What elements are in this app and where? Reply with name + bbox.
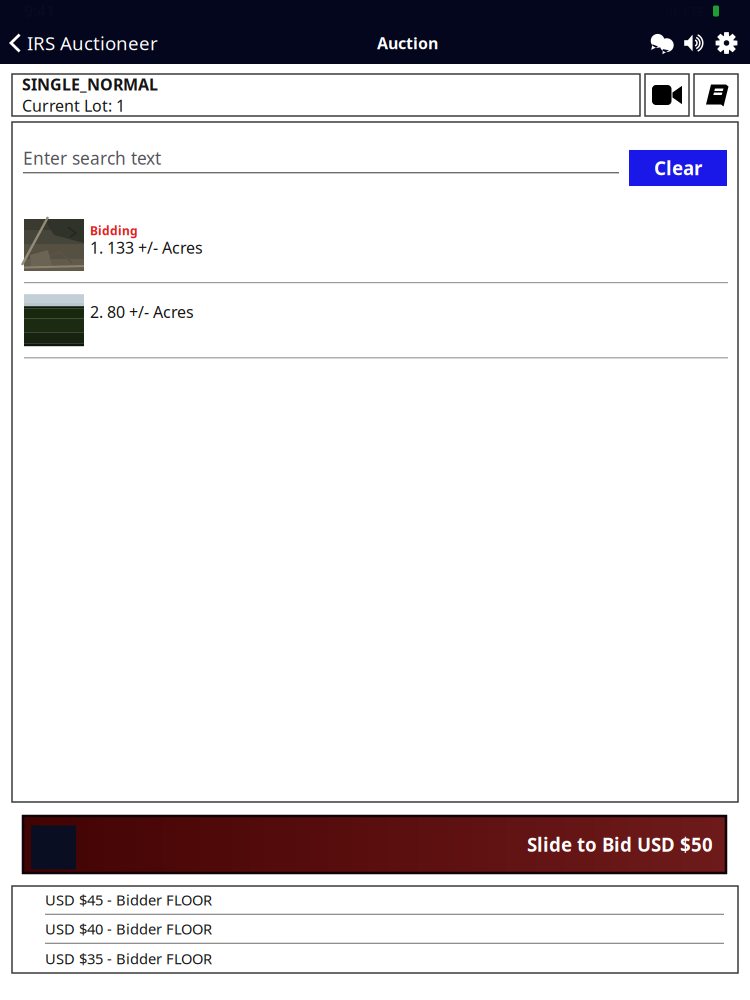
staticText: Bidding: [90, 222, 138, 238]
staticText: 1. 133 +/- Acres: [90, 237, 203, 258]
button[interactable]: Sound: [683, 29, 707, 57]
staticText: USD $45 - Bidder FLOOR: [45, 890, 212, 910]
staticText: SINGLE_NORMAL: [22, 74, 158, 95]
button[interactable]: Clear: [629, 150, 727, 186]
staticText: Clear: [654, 156, 702, 180]
staticText: Current Lot: 1: [22, 95, 125, 116]
staticText: IRS Auctioneer: [27, 31, 158, 55]
button[interactable]: Bidding: [12, 208, 738, 283]
staticText: USD $35 - Bidder FLOOR: [45, 949, 212, 968]
button[interactable]: Video stream: [645, 74, 689, 116]
staticText: Auction: [377, 32, 438, 54]
button[interactable]: 2. 80 +/- Acres: [12, 283, 738, 358]
staticText: Slide to Bid USD $50: [527, 832, 713, 857]
button[interactable]: Slide to Bid USD $50: [12, 816, 738, 873]
button[interactable]: IRS Auctioneer: [0, 22, 166, 64]
staticText: Enter search text: [23, 146, 161, 169]
staticText: USD $40 - Bidder FLOOR: [45, 919, 212, 939]
button[interactable]: Settings: [715, 29, 738, 57]
staticText: 2. 80 +/- Acres: [90, 301, 194, 322]
button[interactable]: Catalog: [694, 74, 738, 116]
button[interactable]: Messages: [649, 29, 675, 57]
